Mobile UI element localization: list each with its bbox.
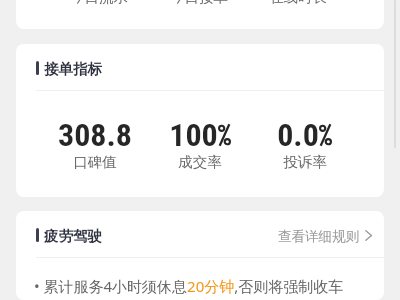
button[interactable]: 查看详细规则	[278, 222, 372, 247]
staticText: 100	[169, 116, 218, 154]
staticText: 今日流水	[70, 0, 128, 6]
staticText: 在线时长	[269, 0, 327, 6]
other: 查看详细规则	[365, 230, 372, 241]
staticText: 0.0	[277, 116, 319, 154]
staticText: 疲劳驾驶	[44, 227, 102, 245]
staticText: 接单指标	[44, 60, 102, 78]
staticText: 308.8	[58, 116, 132, 154]
staticText: 投诉率	[283, 153, 327, 171]
staticText: • 累计服务4小时须休息20分钟,否则将强制收车	[34, 276, 344, 296]
staticText: 今日接单	[170, 0, 228, 6]
staticText: 查看详细规则	[278, 228, 359, 245]
staticText: 口碑值	[73, 153, 117, 171]
staticText: 成交率	[178, 153, 222, 171]
